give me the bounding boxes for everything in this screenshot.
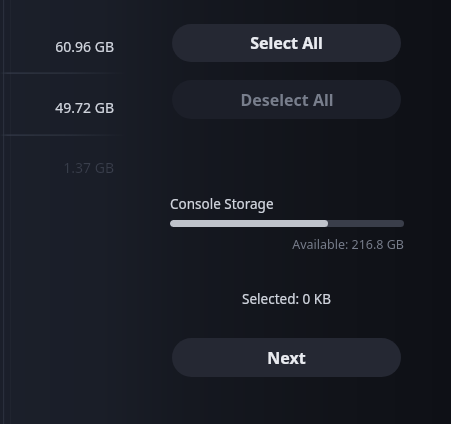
- staticText: Console Storage: [170, 195, 274, 213]
- button[interactable]: Next: [172, 338, 401, 377]
- staticText: Selected: 0 KB: [242, 290, 331, 308]
- button[interactable]: Select All: [172, 24, 401, 62]
- staticText: Next: [267, 347, 306, 369]
- staticText: Deselect All: [240, 89, 334, 111]
- staticText: 49.72 GB: [55, 98, 114, 117]
- button[interactable]: Deselect All: [172, 80, 401, 119]
- staticText: 60.96 GB: [55, 37, 114, 56]
- staticText: Available: 216.8 GB: [292, 236, 404, 253]
- staticText: Select All: [250, 32, 323, 54]
- staticText: 1.37 GB: [63, 158, 114, 177]
